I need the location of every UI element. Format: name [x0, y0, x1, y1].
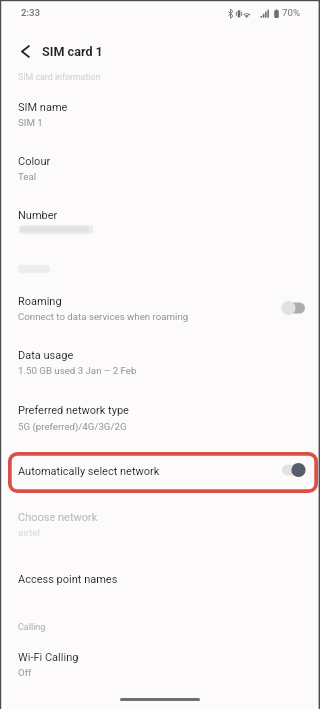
- staticText: SIM card 1: [42, 44, 103, 59]
- staticText: 5G (preferred)/4G/3G/2G: [18, 421, 127, 432]
- staticText: Number: [18, 209, 58, 222]
- button[interactable]: [0, 500, 320, 542]
- staticText: 1.50 GB used 3 Jan – 2 Feb: [18, 365, 137, 376]
- staticText: Preferred network type: [18, 404, 129, 417]
- button[interactable]: [0, 286, 320, 332]
- button[interactable]: [0, 642, 320, 684]
- staticText: Choose network: [18, 511, 98, 524]
- button[interactable]: [0, 453, 320, 492]
- button[interactable]: Toggle on: [278, 459, 310, 481]
- staticText: 2:33: [21, 7, 41, 18]
- staticText: Roaming: [18, 295, 62, 308]
- staticText: SIM name: [18, 101, 68, 114]
- staticText: Data usage: [18, 349, 74, 362]
- button[interactable]: [0, 340, 320, 384]
- staticText: Teal: [18, 171, 37, 182]
- button[interactable]: [0, 395, 320, 441]
- button[interactable]: [0, 562, 320, 600]
- staticText: 70%: [282, 7, 300, 18]
- staticText: Wi-Fi Calling: [18, 651, 79, 664]
- staticText: Connect to data services when roaming: [18, 311, 189, 322]
- staticText: SIM 1: [18, 117, 43, 128]
- button[interactable]: [0, 88, 320, 132]
- button[interactable]: Toggle off: [278, 297, 310, 319]
- button[interactable]: [0, 142, 320, 186]
- button[interactable]: Back: [13, 39, 38, 64]
- staticText: airtel: [18, 527, 40, 538]
- staticText: SIM card information: [18, 72, 101, 82]
- staticText: Automatically select network: [18, 465, 160, 478]
- staticText: Off: [18, 667, 32, 678]
- staticText: Access point names: [18, 573, 118, 586]
- staticText: Colour: [18, 155, 51, 168]
- button[interactable]: [0, 197, 320, 241]
- staticText: Calling: [18, 622, 46, 633]
